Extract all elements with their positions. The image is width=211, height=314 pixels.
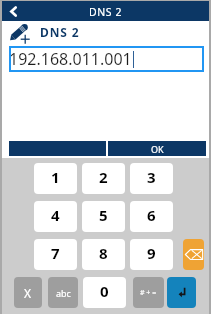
button[interactable]: 192.168.011.001: [9, 46, 204, 72]
button[interactable]: # + =: [133, 277, 164, 308]
button[interactable]: Backspace: [183, 239, 204, 270]
staticText: 2: [99, 167, 108, 187]
staticText: DNS 2: [40, 24, 80, 40]
button[interactable]: abc: [48, 277, 78, 308]
button[interactable]: 7: [34, 239, 77, 270]
staticText: OK: [151, 143, 164, 155]
staticText: 7: [51, 243, 60, 263]
staticText: # + =: [140, 288, 157, 298]
staticText: 4: [51, 205, 60, 225]
button[interactable]: 6: [130, 201, 173, 232]
button[interactable]: 3: [130, 163, 173, 194]
button[interactable]: 1: [34, 163, 77, 194]
button[interactable]: Enter: [167, 277, 196, 308]
button[interactable]: Back: [2, 1, 24, 21]
staticText: 5: [99, 205, 108, 225]
staticText: 3: [147, 167, 156, 187]
button[interactable]: OK: [108, 141, 206, 156]
staticText: 8: [99, 243, 108, 263]
staticText: 0: [100, 281, 109, 301]
staticText: 6: [147, 205, 156, 225]
button[interactable]: 8: [82, 239, 125, 270]
button[interactable]: X: [14, 277, 42, 308]
staticText: abc: [56, 287, 71, 299]
button[interactable]: 2: [82, 163, 125, 194]
staticText: 9: [147, 243, 156, 263]
button[interactable]: 0: [83, 277, 126, 308]
button[interactable]: 5: [82, 201, 125, 232]
staticText: DNS 2: [89, 5, 123, 19]
button[interactable]: 4: [34, 201, 77, 232]
staticText: 1: [51, 167, 60, 187]
staticText: 192.168.011.001: [9, 48, 132, 70]
staticText: X: [24, 285, 32, 301]
button[interactable]: 9: [130, 239, 173, 270]
